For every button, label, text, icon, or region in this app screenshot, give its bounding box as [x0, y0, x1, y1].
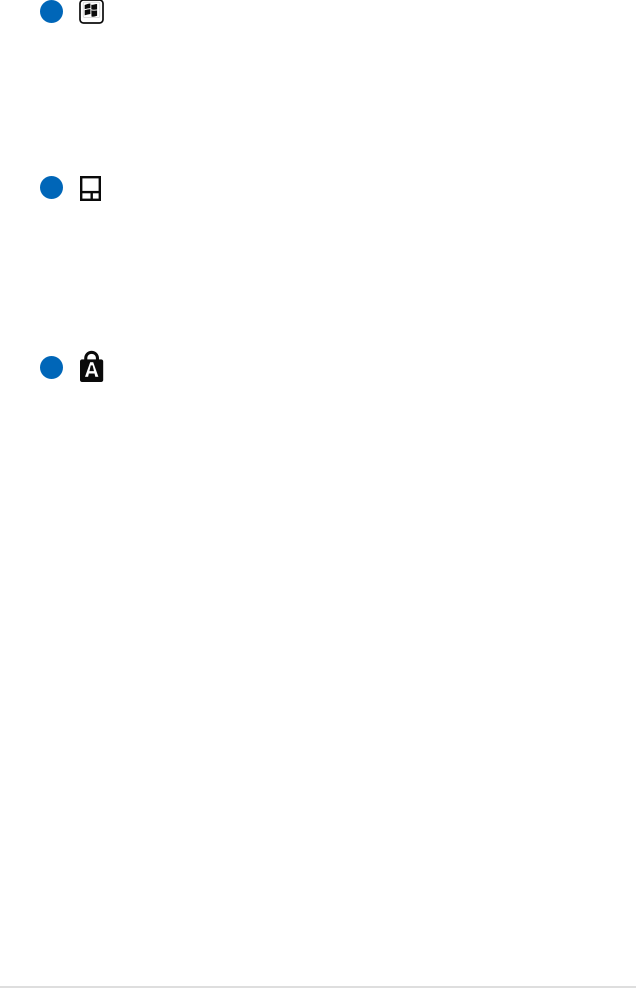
button[interactable]: Snap layout key	[40, 176, 101, 201]
button[interactable]: Caps lock key	[40, 349, 103, 380]
button[interactable]: Windows key	[40, 0, 103, 23]
